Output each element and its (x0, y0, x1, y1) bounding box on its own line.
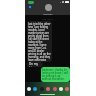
staticText: Just tried the other new Tuor folding mo… (28, 22, 51, 61)
staticText: Awesome, thanks for letting me know, I w… (42, 68, 69, 80)
button[interactable]: Recording (28, 1, 34, 4)
button[interactable]: Just tried the other new Tuor folding mo… (27, 21, 52, 62)
button[interactable]: App 2 (40, 87, 44, 91)
button[interactable]: App 5 (59, 87, 63, 91)
button[interactable]: App 3 (46, 87, 50, 91)
button[interactable]: App 4 (53, 87, 57, 91)
button[interactable]: Awesome, thanks for letting me know, I w… (41, 67, 70, 82)
button[interactable]: Back (28, 5, 32, 9)
staticText: Alex Ray (43, 12, 53, 15)
button[interactable]: On my late one (27, 62, 43, 67)
button[interactable]: App 0 (27, 87, 31, 91)
staticText: On my late one (29, 62, 41, 67)
button[interactable]: App 1 (33, 87, 37, 91)
staticText: Thu, Jun 6 (25, 17, 70, 20)
button[interactable]: App 6 (65, 87, 69, 91)
